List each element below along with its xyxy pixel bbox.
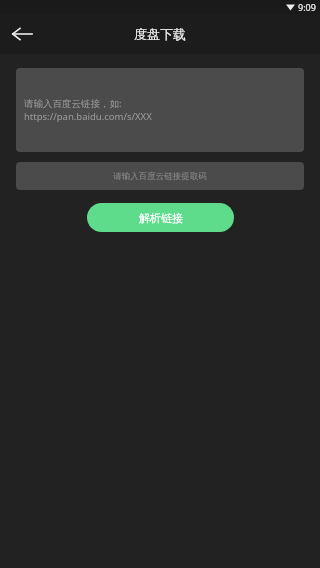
button[interactable]: 解析链接	[87, 203, 234, 232]
staticText: 请输入百度云链接，如:	[24, 97, 122, 110]
staticText: 9:09	[298, 1, 316, 13]
staticText: 解析链接	[139, 211, 183, 225]
button[interactable]: 请输入百度云链接，如:	[16, 68, 304, 152]
staticText: https://pan.baidu.com/s/XXX	[24, 110, 152, 123]
staticText: 请输入百度云链接提取码	[113, 171, 207, 182]
button[interactable]: 请输入百度云链接提取码	[16, 162, 304, 190]
staticText: 度盘下载	[134, 26, 186, 42]
button[interactable]: Back	[0, 14, 44, 54]
